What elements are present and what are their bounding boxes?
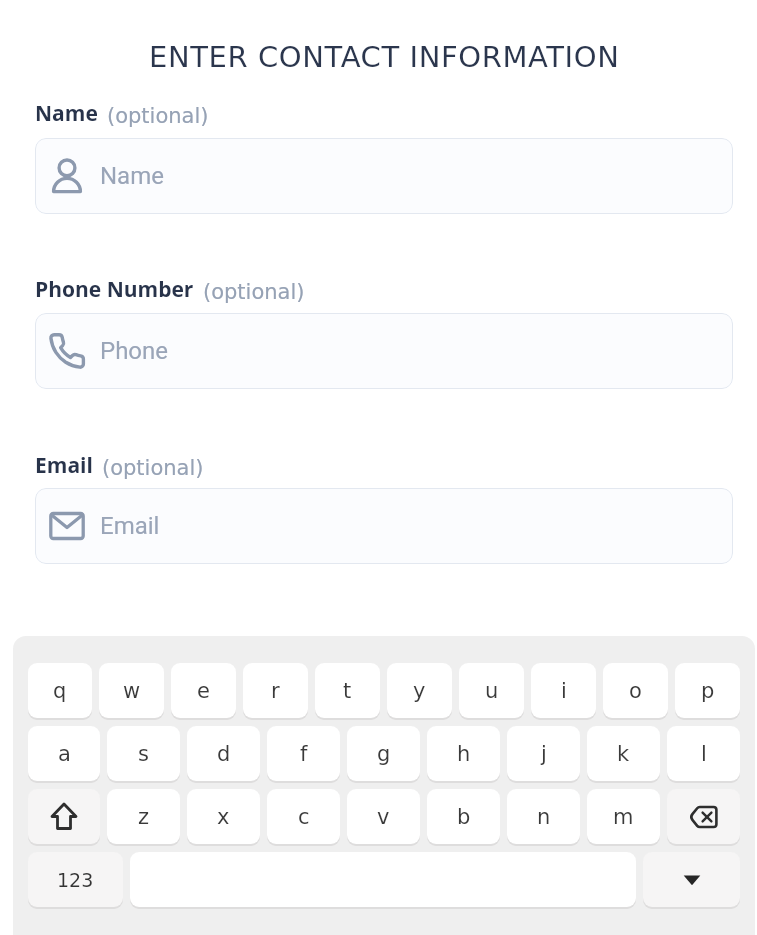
button[interactable]: e (171, 663, 236, 718)
button[interactable]: d (187, 726, 260, 781)
staticText: Name (100, 162, 164, 190)
button[interactable]: w (99, 663, 164, 718)
staticText: x (217, 805, 230, 829)
button[interactable]: q (28, 663, 92, 718)
staticText: v (377, 805, 390, 829)
staticText: Phone Number (35, 275, 194, 304)
button[interactable]: x (187, 789, 260, 844)
staticText: Name (35, 99, 98, 128)
button[interactable]: r (243, 663, 308, 718)
staticText: Email (35, 451, 93, 480)
staticText: s (138, 742, 149, 766)
button[interactable]: Phone (35, 313, 733, 389)
button[interactable] (667, 789, 740, 844)
staticText: t (343, 679, 352, 703)
staticText: u (485, 679, 499, 703)
button[interactable]: h (427, 726, 500, 781)
button[interactable]: p (675, 663, 740, 718)
staticText: k (617, 742, 630, 766)
button[interactable]: i (531, 663, 596, 718)
button[interactable]: y (387, 663, 452, 718)
staticText: q (53, 679, 67, 703)
button[interactable]: a (28, 726, 100, 781)
staticText: y (413, 679, 426, 703)
staticText: Email (100, 512, 160, 540)
button[interactable]: k (587, 726, 660, 781)
staticText: Phone (100, 337, 169, 365)
staticText: w (123, 679, 141, 703)
staticText: m (613, 805, 634, 829)
button[interactable]: l (667, 726, 740, 781)
button[interactable]: j (507, 726, 580, 781)
button[interactable]: b (427, 789, 500, 844)
staticText: f (300, 742, 308, 766)
staticText: c (298, 805, 310, 829)
button[interactable]: 123 (28, 852, 123, 907)
staticText: (optional) (203, 280, 305, 304)
staticText: o (629, 679, 642, 703)
staticText: b (457, 805, 471, 829)
button[interactable]: t (315, 663, 380, 718)
staticText: z (138, 805, 150, 829)
staticText: r (271, 679, 280, 703)
button[interactable] (28, 789, 100, 844)
button[interactable]: g (347, 726, 420, 781)
button[interactable]: s (107, 726, 180, 781)
staticText: a (58, 742, 71, 766)
button[interactable]: o (603, 663, 668, 718)
button[interactable]: c (267, 789, 340, 844)
button[interactable]: z (107, 789, 180, 844)
button[interactable]: f (267, 726, 340, 781)
staticText: l (701, 742, 707, 766)
button[interactable]: m (587, 789, 660, 844)
staticText: ENTER CONTACT INFORMATION (149, 40, 620, 74)
button[interactable]: v (347, 789, 420, 844)
staticText: i (561, 679, 567, 703)
staticText: j (541, 742, 547, 766)
staticText: d (217, 742, 231, 766)
staticText: h (457, 742, 471, 766)
staticText: (optional) (107, 104, 209, 128)
staticText: n (537, 805, 551, 829)
button[interactable]: Name (35, 138, 733, 214)
staticText: e (197, 679, 210, 703)
staticText: g (377, 742, 391, 766)
staticText: (optional) (102, 456, 204, 480)
button[interactable]: n (507, 789, 580, 844)
button[interactable] (643, 852, 740, 907)
staticText: p (701, 679, 715, 703)
button[interactable]: u (459, 663, 524, 718)
staticText: 123 (57, 869, 94, 891)
button[interactable]: Email (35, 488, 733, 564)
